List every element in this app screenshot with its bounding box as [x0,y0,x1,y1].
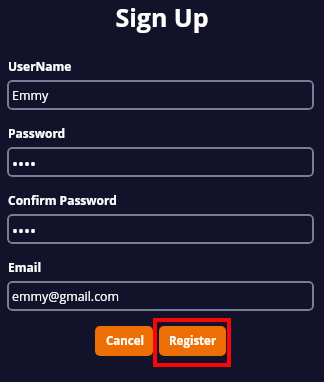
button[interactable]: •••• [7,214,314,244]
button[interactable]: Register [159,326,226,356]
staticText: Register [169,333,217,349]
staticText: UserName [8,58,72,74]
staticText: •••• [12,220,37,242]
staticText: Emmy [12,87,49,104]
staticText: Sign Up [0,0,324,34]
staticText: Email [8,259,42,275]
staticText: emmy@gmail.com [12,288,120,305]
button[interactable]: Cancel [95,326,153,356]
staticText: Cancel [106,333,145,349]
staticText: Confirm Password [8,192,117,208]
button[interactable]: •••• [7,147,314,177]
button[interactable]: Emmy [7,80,314,110]
staticText: •••• [12,153,37,175]
button[interactable]: emmy@gmail.com [7,281,314,311]
staticText: Password [8,125,66,141]
